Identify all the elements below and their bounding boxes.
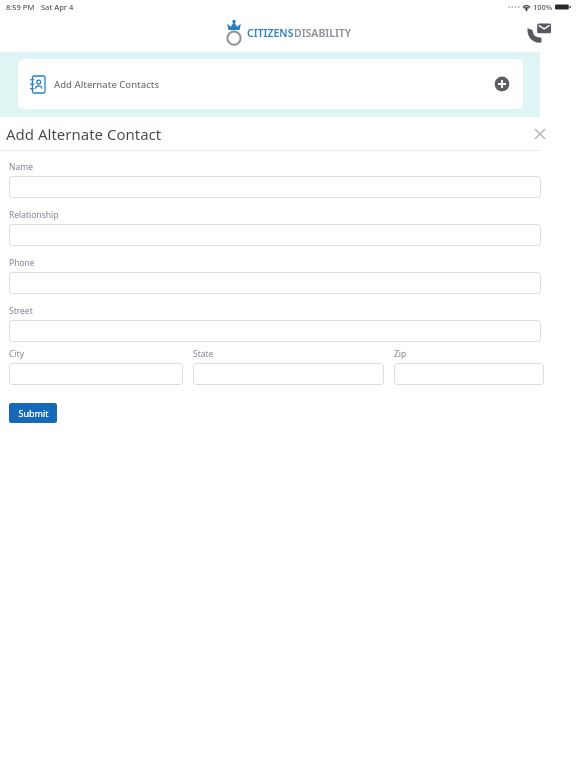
button[interactable]: Submit xyxy=(9,403,57,423)
staticText: Zip xyxy=(394,348,407,360)
button[interactable] xyxy=(9,176,541,198)
staticText: Add Alternate Contact xyxy=(6,124,162,144)
staticText: Sat Apr 4 xyxy=(41,2,74,12)
button[interactable]: Add Alternate Contacts xyxy=(18,59,523,109)
button[interactable] xyxy=(394,363,544,385)
button[interactable]: Close xyxy=(531,125,549,143)
staticText: Add Alternate Contacts xyxy=(54,78,160,91)
button[interactable]: Add alternate contact xyxy=(493,75,511,93)
staticText: 8:59 PM xyxy=(6,2,35,12)
staticText: Relationship xyxy=(9,209,59,221)
button[interactable] xyxy=(9,320,541,342)
staticText: DISABILITY xyxy=(294,26,352,40)
staticText: Submit xyxy=(18,407,49,419)
staticText: CITIZENS xyxy=(247,26,294,40)
staticText: Name xyxy=(9,161,33,173)
button[interactable] xyxy=(9,272,541,294)
button[interactable] xyxy=(193,363,384,385)
staticText: 100% xyxy=(533,2,553,12)
staticText: City xyxy=(9,348,24,360)
staticText: State xyxy=(193,348,214,360)
staticText: Street xyxy=(9,305,33,317)
button[interactable] xyxy=(9,363,183,385)
button[interactable]: Contact us by phone or email xyxy=(524,18,554,48)
button[interactable] xyxy=(9,224,541,246)
staticText: Phone xyxy=(9,257,35,269)
